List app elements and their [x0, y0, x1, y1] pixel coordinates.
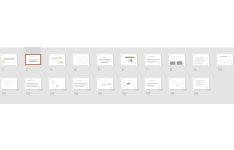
staticText: 17: [146, 91, 150, 95]
button[interactable]: Slide 2: [25, 54, 41, 65]
button[interactable]: Slide 18: [169, 78, 185, 89]
staticText: 2: [26, 67, 28, 71]
button[interactable]: Slide 16: [121, 78, 137, 89]
staticText: 3: [50, 67, 52, 71]
staticText: 18: [170, 91, 174, 95]
button[interactable]: Slide 5: [97, 54, 113, 65]
staticText: 5: [98, 67, 100, 71]
button[interactable]: Slide 13: [49, 78, 65, 89]
button[interactable]: Slide 9: [193, 54, 209, 65]
staticText: 15: [98, 91, 102, 95]
staticText: 12: [26, 91, 30, 95]
staticText: 1: [2, 67, 4, 71]
staticText: 8: [170, 67, 172, 71]
button[interactable]: Slide 3: [49, 54, 65, 65]
button[interactable]: Slide 14: [73, 78, 89, 89]
button[interactable]: Slide 10: [217, 54, 233, 65]
staticText: 9: [194, 67, 196, 71]
button[interactable]: Slide 15: [97, 78, 113, 89]
button[interactable]: Slide 7: [145, 54, 161, 65]
staticText: 11: [2, 91, 6, 95]
button[interactable]: Slide 12: [25, 78, 41, 89]
button[interactable]: Slide 6: [121, 54, 137, 65]
button[interactable]: Slide 8: [169, 54, 185, 65]
button[interactable]: Slide 4: [73, 54, 89, 65]
staticText: 6: [122, 67, 124, 71]
staticText: 10: [218, 67, 222, 71]
button[interactable]: Slide 1: [1, 54, 17, 65]
button[interactable]: Slide 11: [1, 78, 17, 89]
staticText: 16: [122, 91, 126, 95]
staticText: 4: [74, 67, 76, 71]
staticText: 14: [74, 91, 78, 95]
staticText: 19: [194, 91, 198, 95]
staticText: 7: [146, 67, 148, 71]
button[interactable]: Slide 19: [193, 78, 209, 89]
button[interactable]: Slide 17: [145, 78, 161, 89]
staticText: 13: [50, 91, 54, 95]
